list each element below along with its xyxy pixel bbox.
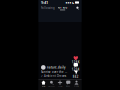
- staticText: Discover: [48, 85, 55, 87]
- button[interactable]: For You: [58, 6, 68, 10]
- button[interactable]: Following: [41, 6, 55, 10]
- button[interactable]: Like: [71, 56, 80, 63]
- button[interactable]: Comments: [71, 64, 80, 71]
- staticText: Following: [41, 6, 55, 10]
- button[interactable]: nature.daily: [41, 65, 65, 70]
- staticText: ♪ Ambient Dreams: [41, 74, 66, 78]
- staticText: 128K: [72, 60, 80, 64]
- staticText: ▪▪▪: [66, 1, 72, 4]
- button[interactable]: Share: [71, 71, 80, 78]
- staticText: For You: [58, 6, 68, 9]
- staticText: Home: [41, 85, 45, 87]
- staticText: Profile: [74, 85, 79, 87]
- staticText: 842: [73, 75, 79, 78]
- staticText: Create: [57, 85, 62, 87]
- button[interactable]: Inbox: [64, 80, 72, 88]
- button[interactable]: Create: [56, 80, 64, 88]
- staticText: 1204: [72, 68, 80, 71]
- staticText: ◣: [72, 1, 74, 4]
- button[interactable]: Search: [75, 6, 80, 10]
- staticText: Inbox: [66, 85, 70, 87]
- staticText: nature.daily: [47, 66, 65, 69]
- staticText: 9:41: [41, 0, 48, 5]
- button[interactable]: Home: [39, 80, 47, 88]
- button[interactable]: Discover: [48, 80, 56, 88]
- button[interactable]: Profile: [72, 80, 80, 88]
- staticText: Sunrise over the mountains: [41, 70, 67, 74]
